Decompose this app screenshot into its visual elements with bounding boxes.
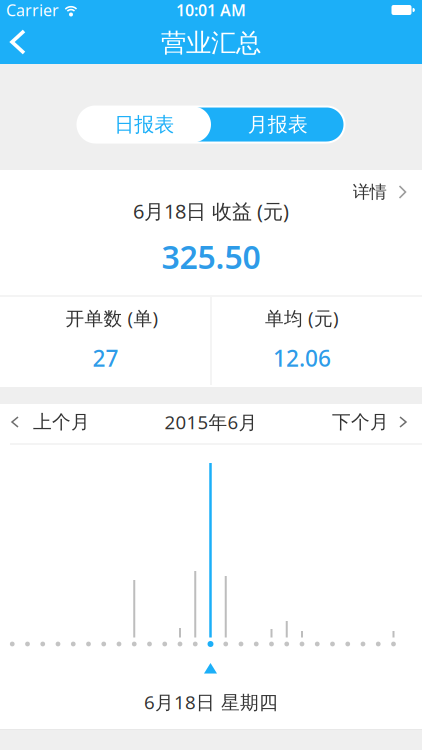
staticText: 10:01 AM [176,0,246,21]
staticText: 6月18日 星期四 [144,690,278,714]
button[interactable]: 月报表 [211,106,344,142]
staticText: Carrier [6,0,59,21]
staticText: 12.06 [273,343,331,373]
staticText: 单均 (元) [265,306,339,330]
button[interactable]: 上个月 [0,410,90,433]
staticText: 6月18日 收益 (元) [133,198,289,224]
staticText: 月报表 [248,112,308,137]
staticText: 日报表 [114,112,174,137]
button[interactable]: 下个月 [332,410,422,433]
button[interactable]: Back [0,20,32,64]
staticText: 27 [92,343,118,373]
button[interactable]: 日报表 [77,106,211,142]
staticText: 营业汇总 [161,27,261,58]
button[interactable]: 详情 [352,181,407,203]
staticText: 详情 [352,181,386,203]
staticText: 下个月 [332,410,389,433]
staticText: 2015年6月 [164,410,257,434]
staticText: 开单数 (单) [65,306,158,330]
staticText: 325.50 [161,235,260,278]
staticText: 上个月 [33,410,90,433]
